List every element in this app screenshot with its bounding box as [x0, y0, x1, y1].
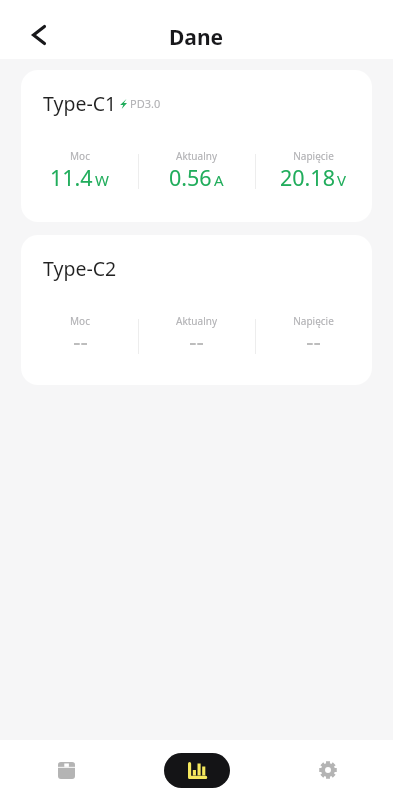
staticText: Type-C2	[43, 255, 117, 282]
button[interactable]: Back	[15, 11, 63, 59]
button[interactable]: Type-C2	[21, 235, 372, 385]
staticText: Aktualny	[176, 314, 217, 328]
staticText: V	[337, 170, 347, 190]
staticText: A	[214, 170, 224, 190]
staticText: 0.56	[169, 163, 212, 192]
staticText: Moc	[70, 149, 90, 163]
staticText: Type-C1	[43, 90, 117, 117]
button[interactable]: Settings	[262, 740, 393, 800]
button[interactable]: Data	[164, 753, 230, 788]
staticText: Dane	[169, 23, 224, 52]
staticText: Napięcie	[293, 314, 334, 328]
staticText: PD3.0	[130, 96, 161, 111]
staticText: 20.18	[280, 163, 335, 192]
staticText: 11.4	[50, 163, 93, 192]
staticText: Moc	[70, 314, 90, 328]
staticText: Napięcie	[293, 149, 334, 163]
button[interactable]: Type-C1	[21, 70, 372, 222]
button[interactable]: Devices	[0, 740, 131, 800]
staticText: Aktualny	[176, 149, 217, 163]
staticText: W	[95, 170, 109, 190]
